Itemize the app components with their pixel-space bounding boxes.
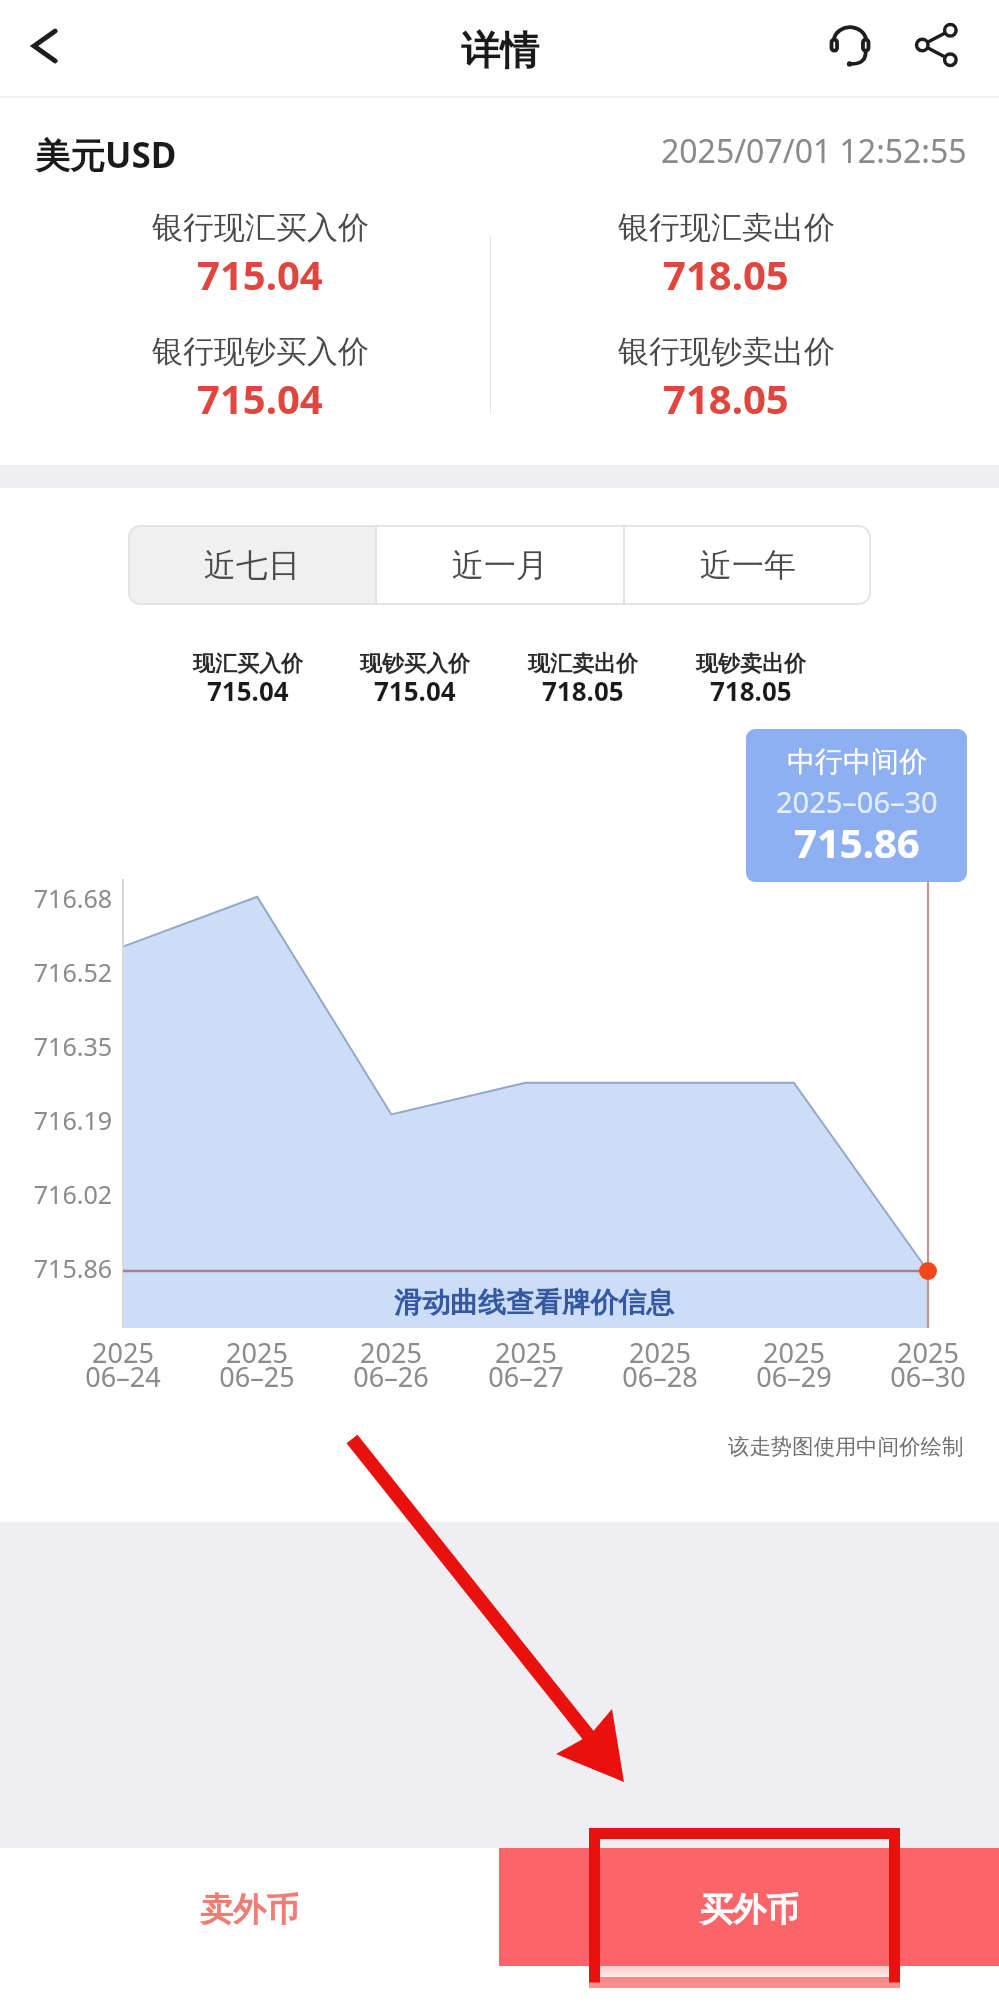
staticText: 2025 06–29 (730, 1334, 858, 1395)
staticText: 买外币 (700, 1889, 799, 1931)
staticText: 2025 06–28 (596, 1334, 724, 1395)
staticText: 现钞买入价 (360, 650, 470, 678)
staticText: 716.52 (0, 955, 112, 989)
button[interactable]: 卖外币 (99, 1848, 399, 1966)
staticText: 2025 06–30 (864, 1334, 992, 1395)
button[interactable]: 近七日 (128, 525, 375, 605)
staticText: 716.02 (0, 1177, 112, 1211)
staticText: 718.05 (663, 371, 789, 425)
staticText: 2025 06–26 (327, 1334, 455, 1395)
staticText: 2025/07/01 12:52:55 (661, 129, 967, 173)
staticText: 715.86 (794, 815, 920, 869)
staticText: 美元USD (35, 131, 177, 179)
staticText: 2025–06–30 (776, 782, 938, 821)
staticText: 银行现钞卖出价 (618, 332, 835, 371)
button[interactable]: Customer service (810, 3, 890, 83)
staticText: 近一年 (700, 545, 796, 585)
staticText: 银行现汇卖出价 (618, 208, 835, 247)
staticText: 2025 06–24 (59, 1334, 187, 1395)
button[interactable]: 近一年 (625, 525, 871, 605)
staticText: 中行中间价 (787, 744, 927, 779)
staticText: 滑动曲线查看牌价信息 (394, 1285, 674, 1320)
staticText: 该走势图使用中间价绘制 (728, 1433, 964, 1460)
staticText: 银行现钞买入价 (152, 332, 369, 371)
staticText: 716.68 (0, 881, 112, 915)
staticText: 716.35 (0, 1029, 112, 1063)
button[interactable]: 买外币 (499, 1848, 999, 1966)
staticText: 近七日 (204, 545, 300, 585)
staticText: 715.04 (207, 673, 289, 708)
staticText: 2025 06–25 (193, 1334, 321, 1395)
staticText: 718.05 (710, 673, 792, 708)
staticText: 716.19 (0, 1103, 112, 1137)
staticText: 卖外币 (200, 1889, 299, 1931)
staticText: 现汇卖出价 (528, 650, 638, 678)
staticText: 715.04 (197, 371, 323, 425)
staticText: 715.04 (197, 247, 323, 301)
button[interactable]: Back (10, 10, 82, 82)
staticText: 715.86 (0, 1251, 112, 1285)
staticText: 715.04 (374, 673, 456, 708)
staticText: 近一月 (452, 545, 548, 585)
staticText: 详情 (461, 26, 539, 75)
staticText: 718.05 (542, 673, 624, 708)
staticText: 现钞卖出价 (696, 650, 806, 678)
staticText: 2025 06–27 (462, 1334, 590, 1395)
button[interactable]: 近一月 (377, 525, 623, 605)
staticText: 现汇买入价 (193, 650, 303, 678)
button[interactable]: Share (897, 5, 977, 85)
staticText: 718.05 (663, 247, 789, 301)
staticText: 银行现汇买入价 (152, 208, 369, 247)
